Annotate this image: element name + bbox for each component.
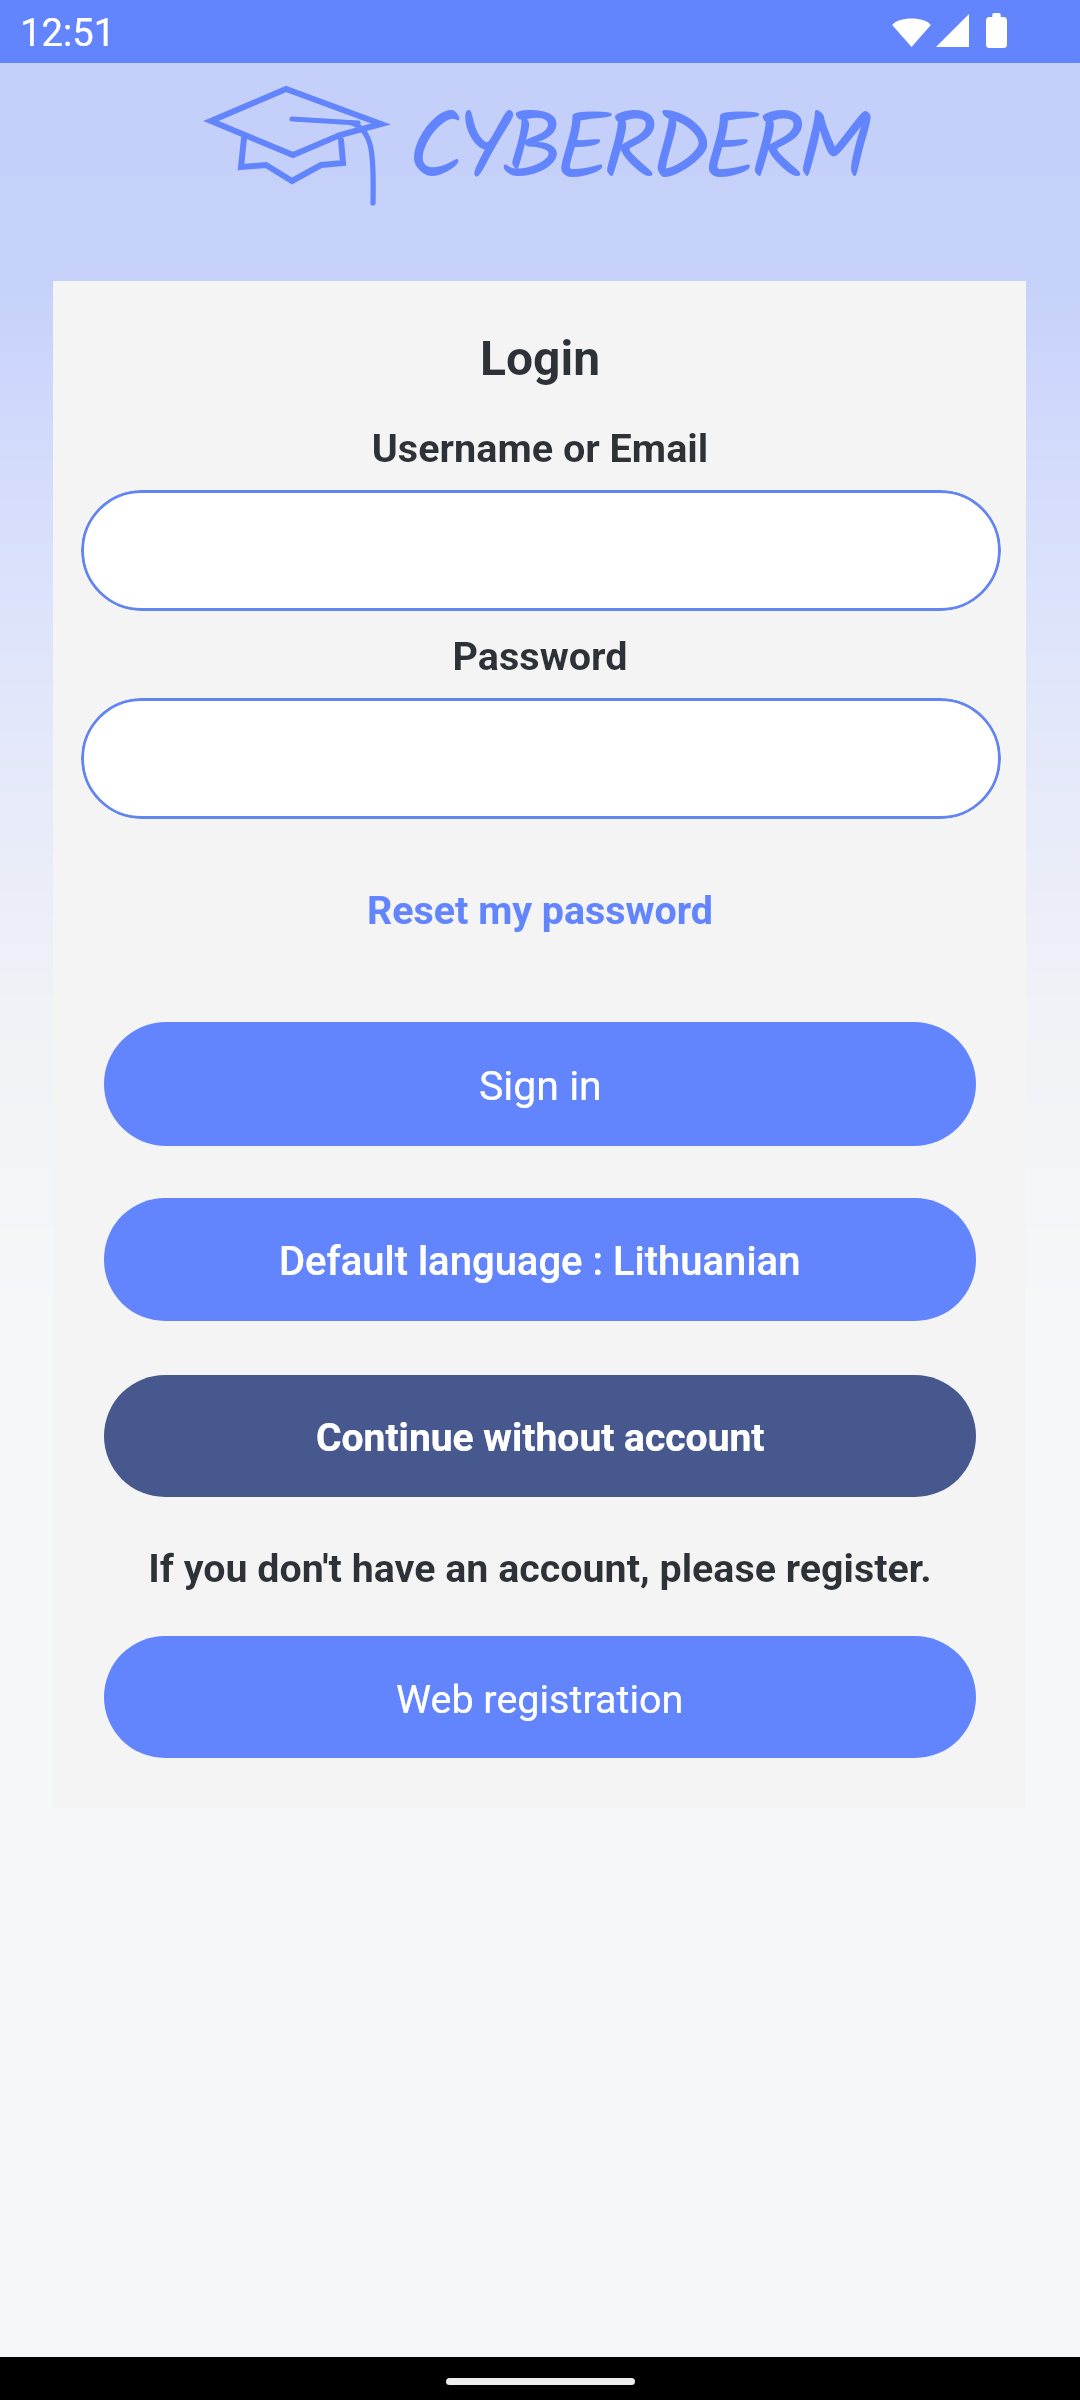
button[interactable]: Web registration [104, 1636, 976, 1758]
staticText: Password [0, 633, 1080, 679]
staticText: Continue without account [316, 1415, 765, 1461]
other: Cyberderm graduation cap logo [200, 85, 382, 210]
staticText: Sign in [479, 1062, 602, 1110]
staticText: If you don't have an account, please reg… [0, 1545, 1080, 1591]
button[interactable]: Default language : Lithuanian [104, 1198, 976, 1321]
staticText: Login [0, 330, 1080, 386]
staticText: Web registration [396, 1676, 684, 1722]
button[interactable]: Username or Email input field [81, 490, 1001, 611]
staticText: Username or Email [0, 425, 1080, 471]
button[interactable]: Reset my password [0, 886, 1080, 934]
staticText: Default language : Lithuanian [279, 1238, 801, 1285]
button[interactable]: Sign in [104, 1022, 976, 1146]
staticText: CYBERDERM [408, 79, 865, 227]
staticText: Reset my password [367, 887, 713, 933]
button[interactable]: Password input field [81, 698, 1001, 819]
button[interactable]: Continue without account [104, 1375, 976, 1497]
staticText: 12:51 [20, 11, 116, 56]
